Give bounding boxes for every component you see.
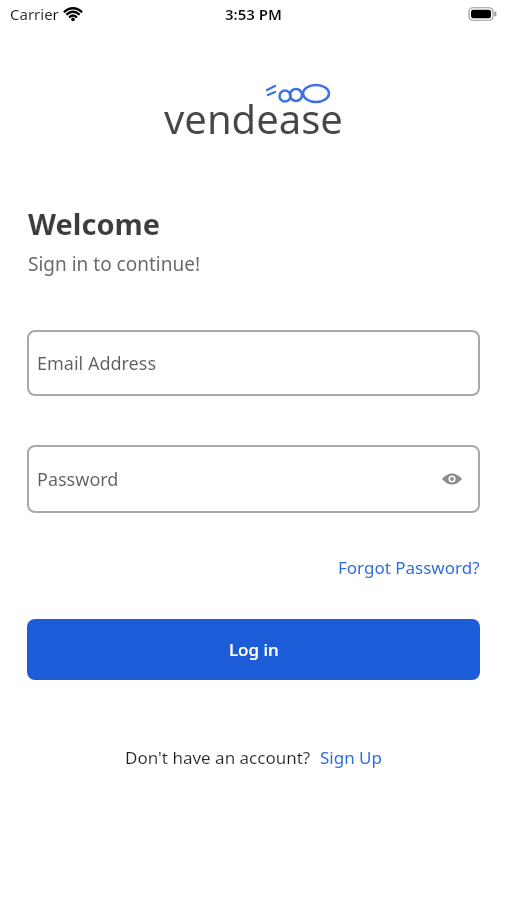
button[interactable]: Sign Up bbox=[320, 746, 382, 769]
button[interactable]: Log in bbox=[27, 619, 480, 680]
staticText: 3:53 PM bbox=[225, 4, 282, 24]
staticText: Don't have an account? bbox=[125, 746, 311, 769]
staticText: Welcome bbox=[28, 204, 161, 243]
button[interactable]: Forgot Password? bbox=[338, 556, 480, 579]
staticText: Log in bbox=[229, 638, 279, 661]
staticText: Email Address bbox=[37, 351, 157, 376]
button[interactable] bbox=[442, 472, 462, 486]
staticText: Password bbox=[37, 467, 119, 492]
staticText: vendease bbox=[164, 91, 343, 145]
button[interactable]: Email Address bbox=[27, 330, 480, 396]
staticText: Carrier bbox=[10, 4, 59, 24]
staticText: Sign in to continue! bbox=[28, 251, 201, 277]
button[interactable]: Password bbox=[27, 445, 480, 513]
